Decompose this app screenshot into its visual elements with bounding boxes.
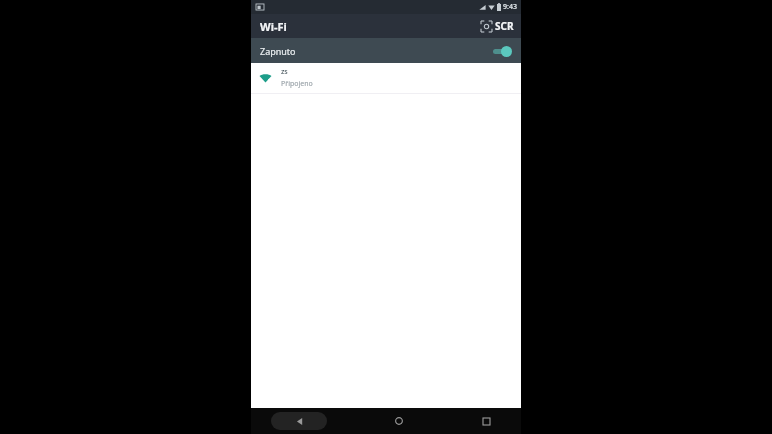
button[interactable]: zs (251, 63, 521, 93)
staticText: Wi-Fi (260, 19, 287, 34)
staticText: SCR (495, 19, 514, 33)
button[interactable]: Home (384, 411, 414, 431)
button[interactable]: Zapnuto (251, 38, 521, 63)
button[interactable]: Screen recorder (479, 17, 516, 35)
staticText: Připojeno (281, 79, 313, 89)
button[interactable]: Back (271, 412, 327, 430)
button[interactable]: Recent apps (471, 411, 501, 431)
staticText: Zapnuto (260, 45, 296, 57)
staticText: zs (281, 67, 288, 77)
staticText: 9:43 (503, 2, 517, 12)
